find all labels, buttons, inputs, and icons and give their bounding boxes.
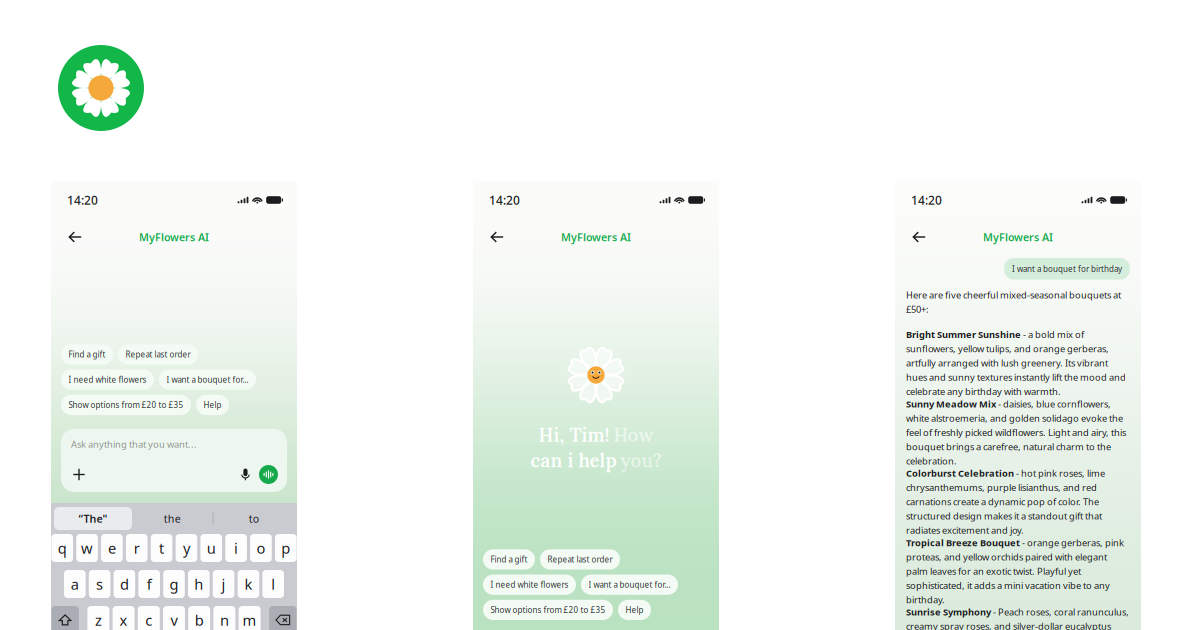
button[interactable]: Dictate bbox=[237, 465, 253, 483]
staticText: Repeat last order bbox=[547, 554, 612, 565]
button[interactable]: Back bbox=[63, 226, 87, 248]
staticText: q bbox=[58, 538, 67, 558]
button[interactable]: t bbox=[151, 534, 172, 562]
button[interactable]: Find a gift bbox=[483, 549, 535, 569]
staticText: the bbox=[164, 511, 181, 526]
button[interactable]: Show options from £20 to £35 bbox=[483, 600, 613, 620]
button[interactable]: Shift bbox=[51, 606, 79, 630]
button[interactable]: Find a gift bbox=[61, 344, 113, 364]
button[interactable]: x bbox=[113, 606, 135, 630]
staticText: x bbox=[120, 610, 128, 630]
button[interactable]: I need white flowers bbox=[61, 370, 154, 390]
staticText: f bbox=[147, 574, 152, 594]
button[interactable]: p bbox=[275, 534, 297, 562]
staticText: p bbox=[281, 538, 290, 558]
button[interactable]: to bbox=[213, 507, 294, 530]
button[interactable]: g bbox=[163, 570, 185, 598]
staticText: 14:20 bbox=[911, 192, 942, 208]
staticText: MyFlowers AI bbox=[139, 230, 209, 244]
button[interactable]: b bbox=[188, 606, 210, 630]
button[interactable]: h bbox=[188, 570, 210, 598]
staticText: Show options from £20 to £35 bbox=[68, 400, 183, 410]
button[interactable]: Delete bbox=[269, 606, 297, 630]
staticText: How bbox=[613, 423, 653, 447]
button[interactable]: the bbox=[132, 507, 213, 530]
button[interactable]: c bbox=[138, 606, 160, 630]
button[interactable]: j bbox=[213, 570, 234, 598]
staticText: d bbox=[120, 574, 129, 594]
button[interactable]: I need white flowers bbox=[483, 575, 576, 595]
staticText: j bbox=[222, 574, 226, 594]
button[interactable]: “The" bbox=[54, 507, 132, 530]
button[interactable]: Show options from £20 to £35 bbox=[61, 395, 191, 415]
staticText: r bbox=[134, 538, 140, 558]
staticText: can i help bbox=[530, 448, 616, 472]
staticText: you? bbox=[620, 448, 661, 472]
button[interactable]: u bbox=[200, 534, 222, 562]
staticText: I want a bouquet for... bbox=[166, 374, 248, 385]
button[interactable]: r bbox=[126, 534, 147, 562]
staticText: Here are five cheerful mixed-seasonal bo… bbox=[906, 289, 1121, 315]
staticText: g bbox=[169, 574, 178, 594]
button[interactable]: o bbox=[250, 534, 272, 562]
staticText: v bbox=[170, 610, 177, 630]
staticText: m bbox=[243, 610, 257, 630]
button[interactable]: Add attachment bbox=[70, 465, 88, 483]
button[interactable]: d bbox=[114, 570, 135, 598]
staticText: Colorburst Celebration - hot pink roses,… bbox=[906, 467, 1105, 536]
button[interactable]: I want a bouquet for... bbox=[159, 370, 256, 390]
staticText: b bbox=[195, 610, 204, 630]
button[interactable]: y bbox=[176, 534, 197, 562]
staticText: Sunny Meadow Mix - daisies, blue cornflo… bbox=[906, 398, 1126, 467]
button[interactable]: Back bbox=[485, 226, 509, 248]
staticText: MyFlowers AI bbox=[561, 230, 631, 244]
button[interactable]: q bbox=[51, 534, 73, 562]
staticText: MyFlowers AI bbox=[983, 230, 1053, 244]
staticText: I need white flowers bbox=[68, 374, 146, 385]
staticText: Help bbox=[625, 605, 643, 615]
button[interactable]: i bbox=[225, 534, 247, 562]
button[interactable]: k bbox=[238, 570, 259, 598]
button[interactable]: I want a bouquet for... bbox=[581, 575, 678, 595]
staticText: 14:20 bbox=[67, 192, 98, 208]
button[interactable]: Voice mode bbox=[253, 465, 278, 484]
staticText: t bbox=[159, 538, 164, 558]
button[interactable]: Help bbox=[196, 395, 229, 415]
button[interactable]: v bbox=[163, 606, 185, 630]
staticText: Help bbox=[203, 400, 221, 410]
button[interactable]: n bbox=[213, 606, 235, 630]
staticText: s bbox=[96, 574, 103, 594]
staticText: Show options from £20 to £35 bbox=[490, 605, 605, 615]
staticText: Ask anything that you want... bbox=[71, 438, 197, 450]
staticText: o bbox=[256, 538, 265, 558]
staticText: Bright Summer Sunshine - a bold mix of s… bbox=[906, 328, 1126, 398]
button[interactable]: z bbox=[87, 606, 109, 630]
button[interactable]: l bbox=[262, 570, 284, 598]
button[interactable]: f bbox=[138, 570, 160, 598]
staticText: “The" bbox=[78, 511, 107, 526]
staticText: w bbox=[81, 538, 93, 558]
staticText: to bbox=[249, 511, 259, 526]
button[interactable]: e bbox=[101, 534, 123, 562]
button[interactable]: Help bbox=[618, 600, 651, 620]
staticText: Sunrise Symphony - Peach roses, coral ra… bbox=[906, 606, 1129, 630]
button[interactable]: Repeat last order bbox=[118, 344, 198, 364]
button[interactable]: w bbox=[76, 534, 98, 562]
staticText: Repeat last order bbox=[125, 349, 190, 360]
button[interactable]: s bbox=[89, 570, 110, 598]
staticText: u bbox=[207, 538, 216, 558]
staticText: i bbox=[234, 538, 238, 558]
staticText: h bbox=[194, 574, 203, 594]
button[interactable]: Repeat last order bbox=[540, 549, 620, 569]
button[interactable]: Back bbox=[907, 226, 931, 248]
staticText: l bbox=[271, 574, 275, 594]
button[interactable]: m bbox=[239, 606, 261, 630]
button[interactable]: a bbox=[64, 570, 86, 598]
staticText: Find a gift bbox=[68, 349, 105, 360]
staticText: I want a bouquet for... bbox=[588, 579, 670, 590]
staticText: n bbox=[220, 610, 229, 630]
staticText: 14:20 bbox=[489, 192, 520, 208]
staticText: Hi, Tim! bbox=[538, 423, 609, 447]
staticText: k bbox=[244, 574, 252, 594]
staticText: e bbox=[108, 538, 116, 558]
